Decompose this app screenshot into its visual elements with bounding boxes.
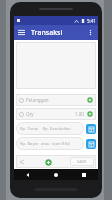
button[interactable]: Open navigation menu [14, 25, 29, 40]
button[interactable]: Back [16, 156, 27, 167]
staticText: Qty [26, 111, 34, 117]
button[interactable]: More options [83, 25, 98, 40]
button[interactable]: SAVE [70, 157, 94, 166]
staticText: Transaksi [31, 28, 63, 38]
button[interactable]: Calculator [86, 139, 96, 149]
button[interactable]: Recent apps [70, 169, 98, 180]
button[interactable]: Qty [16, 108, 96, 120]
button[interactable]: Add Pelanggan [84, 94, 96, 106]
staticText: Rp. Tunai Rp. Kembalian [20, 126, 71, 132]
button[interactable]: Back [14, 169, 42, 180]
staticText: 1.00 [75, 111, 84, 117]
button[interactable]: Pelanggan [16, 94, 96, 106]
staticText: SAVE [77, 159, 87, 165]
staticText: 5:41 [87, 18, 96, 24]
button[interactable]: Calculator [86, 124, 96, 134]
button[interactable]: Rp. Tunai Rp. Kembalian [16, 122, 84, 135]
button[interactable]: Add transaction [42, 156, 54, 168]
staticText: Rp. Bayar atau scan Rfid [20, 141, 70, 147]
button[interactable]: Home [42, 169, 70, 180]
staticText: Pelanggan [26, 97, 49, 103]
button[interactable]: Add Qty [84, 108, 96, 120]
button[interactable]: Rp. Bayar atau scan Rfid [16, 137, 84, 150]
